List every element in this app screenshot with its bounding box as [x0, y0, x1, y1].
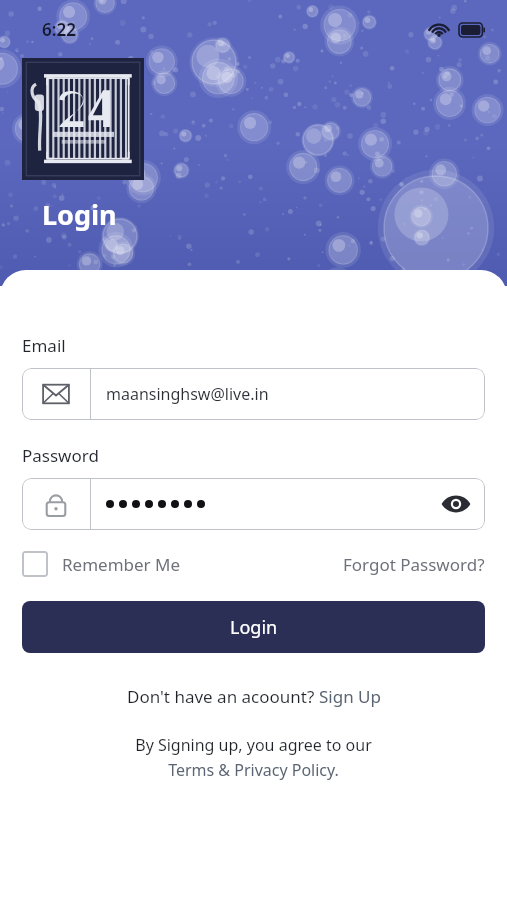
staticText: Login [42, 196, 117, 233]
staticText: 6:22 [42, 18, 76, 41]
button[interactable]: Show password [22, 478, 485, 530]
staticText: Sign Up [319, 685, 381, 708]
button[interactable]: Forgot Password? [343, 553, 485, 576]
staticText: Password [22, 444, 99, 467]
button[interactable]: Show password [427, 478, 485, 530]
staticText: Forgot Password? [343, 553, 485, 576]
staticText: Email [22, 334, 66, 357]
staticText: Don't have an acoount? [127, 685, 319, 708]
staticText: Terms & Privacy Policy. [22, 759, 485, 781]
staticText: Login [230, 615, 278, 640]
button[interactable]: maansinghsw@live.in [22, 368, 485, 420]
button[interactable]: 24 Pure Water Filling Station logo [22, 58, 144, 180]
staticText: Remember Me [62, 553, 181, 576]
button[interactable]: Sign Up [319, 685, 381, 708]
button[interactable]: Terms & Privacy Policy. [22, 759, 485, 781]
button[interactable]: Remember Me [22, 551, 181, 577]
button[interactable]: Login [22, 601, 485, 653]
staticText: maansinghsw@live.in [106, 383, 269, 405]
staticText: By Signing up, you agree to our [22, 734, 485, 756]
